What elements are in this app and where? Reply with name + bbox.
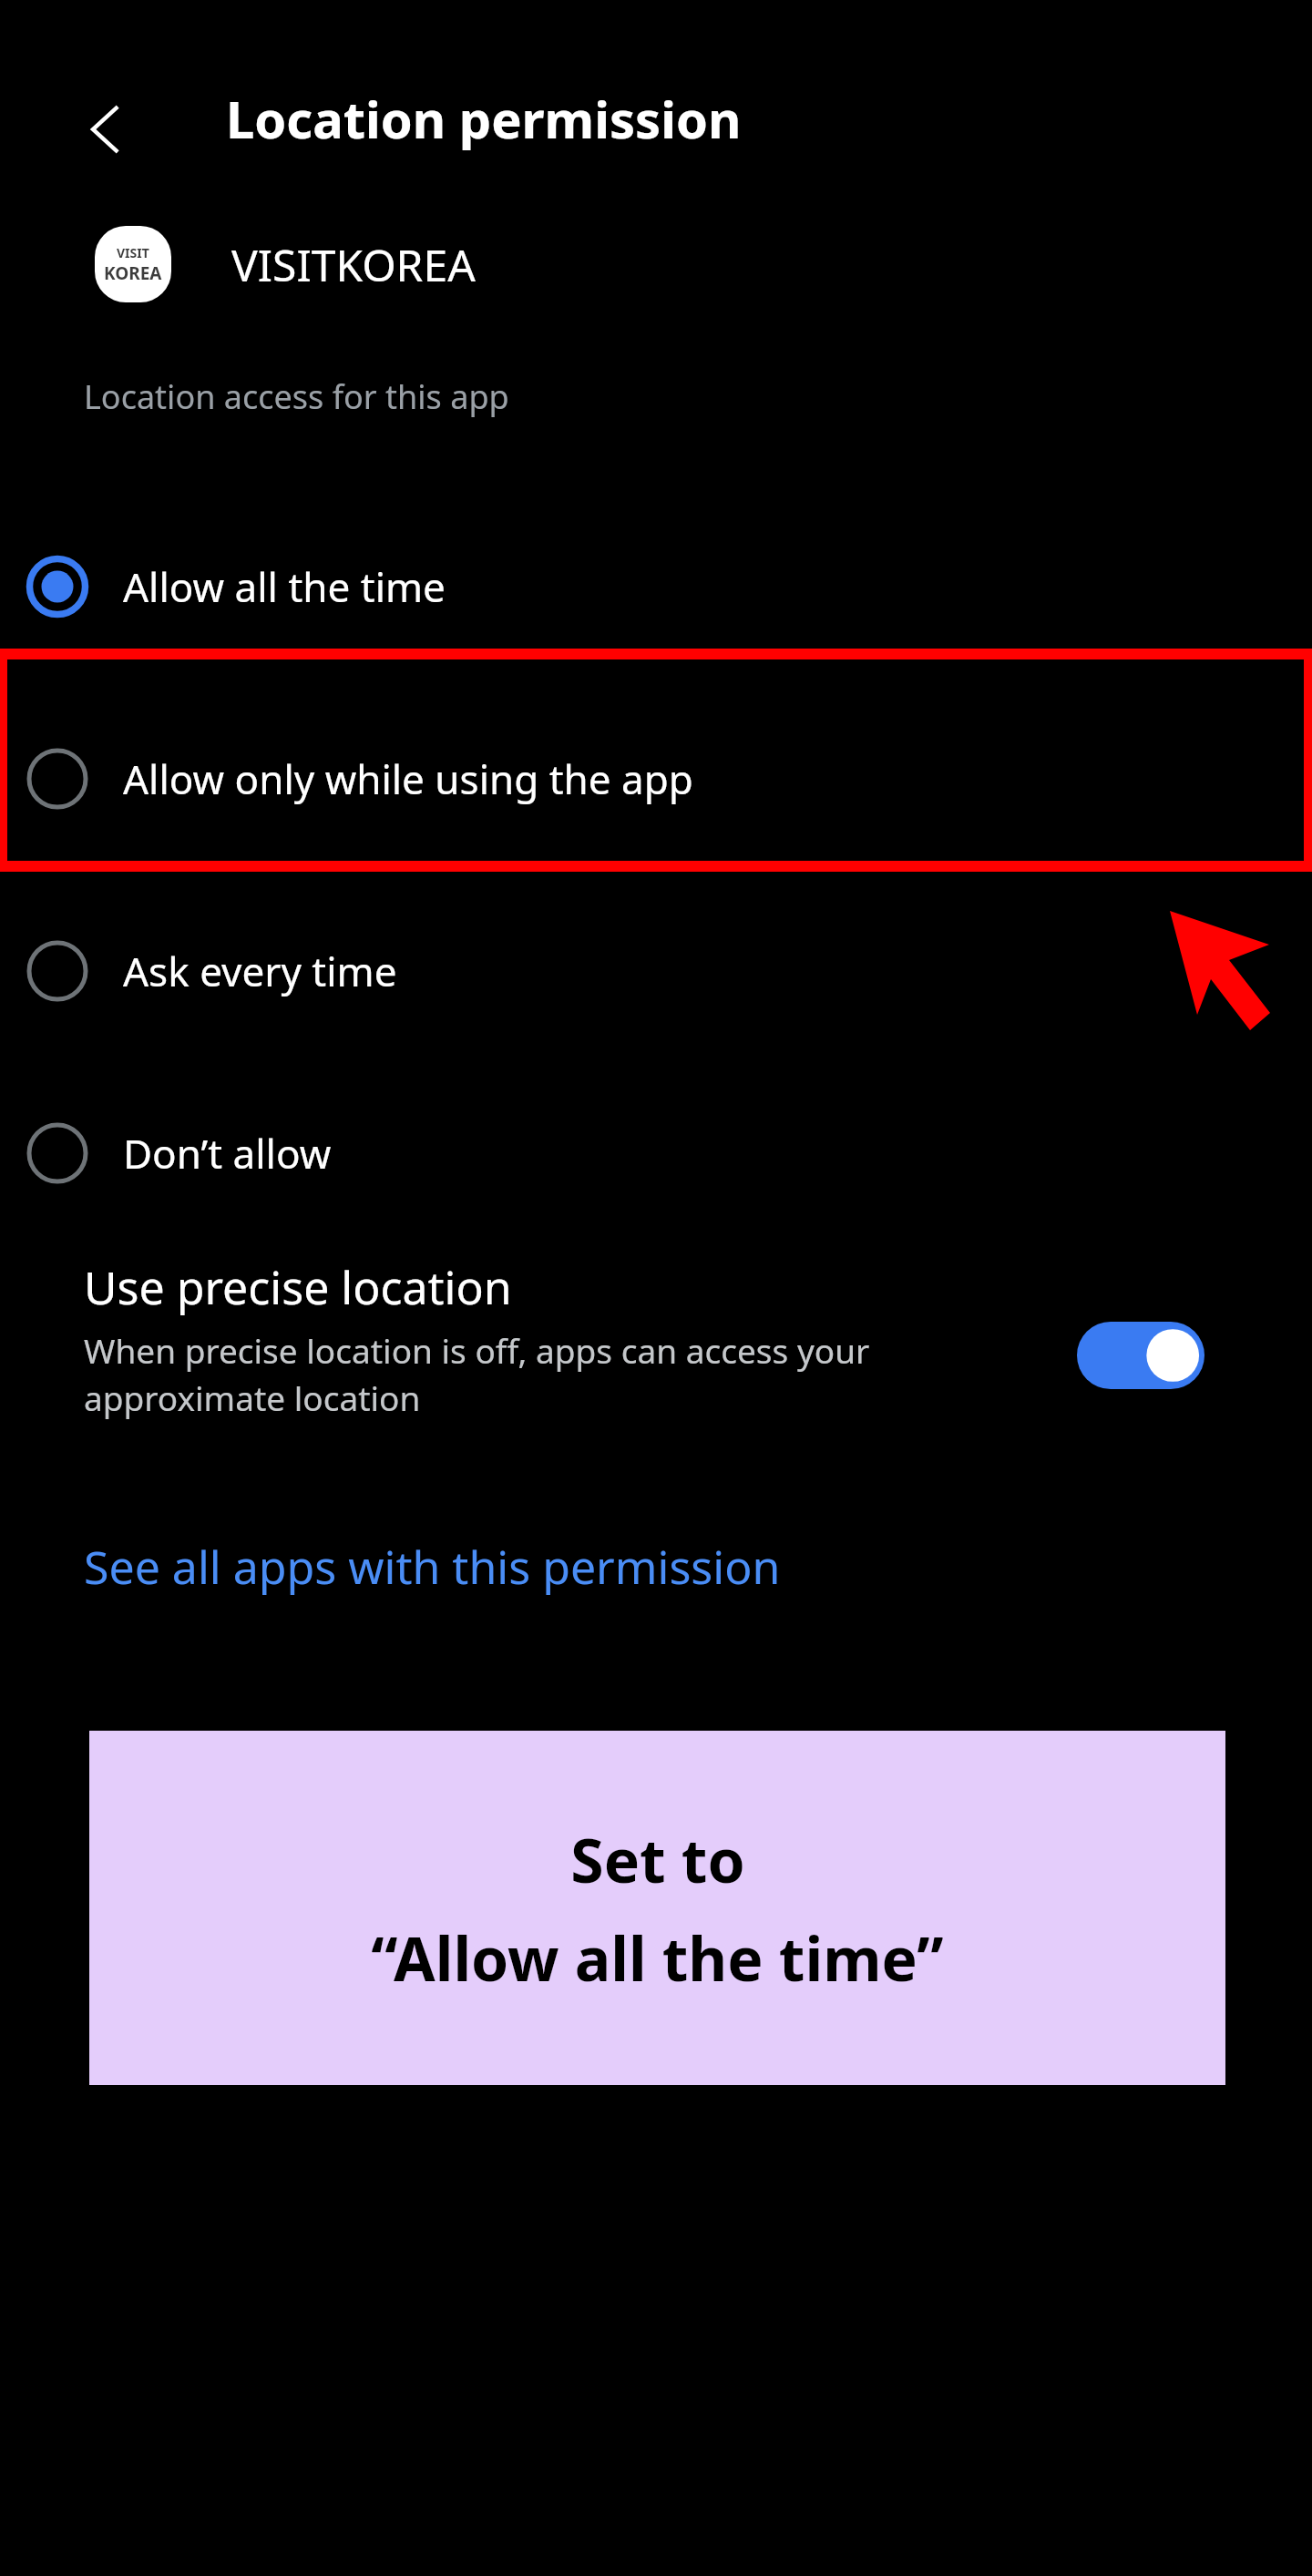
staticText: Ask every time (123, 944, 397, 998)
button[interactable]: Use precise location (0, 1249, 1312, 1421)
button[interactable]: Allow all the time (0, 490, 1312, 682)
button[interactable]: See all apps with this permission (0, 1527, 1312, 1607)
staticText: Location permission (226, 84, 742, 153)
staticText: Set to (570, 1818, 745, 1900)
staticText: “Allow all the time” (371, 1917, 944, 1998)
button[interactable]: Use precise location toggle (1077, 1322, 1204, 1389)
staticText: VISITKOREA (231, 235, 476, 294)
button[interactable]: Don’t allow (0, 1067, 1312, 1240)
staticText: Location access for this app (84, 374, 509, 419)
staticText: KOREA (104, 261, 162, 285)
staticText: Allow all the time (123, 559, 446, 614)
staticText: When precise location is off, apps can a… (84, 1327, 1066, 1421)
button[interactable]: Ask every time (0, 874, 1312, 1067)
staticText: Don’t allow (123, 1126, 332, 1181)
button[interactable]: Allow only while using the app (0, 682, 1312, 874)
staticText: Allow only while using the app (123, 751, 693, 806)
staticText: Use precise location (84, 1256, 512, 1318)
staticText: See all apps with this permission (84, 1536, 781, 1598)
staticText: VISIT (117, 244, 149, 261)
button[interactable]: Back (71, 93, 144, 166)
